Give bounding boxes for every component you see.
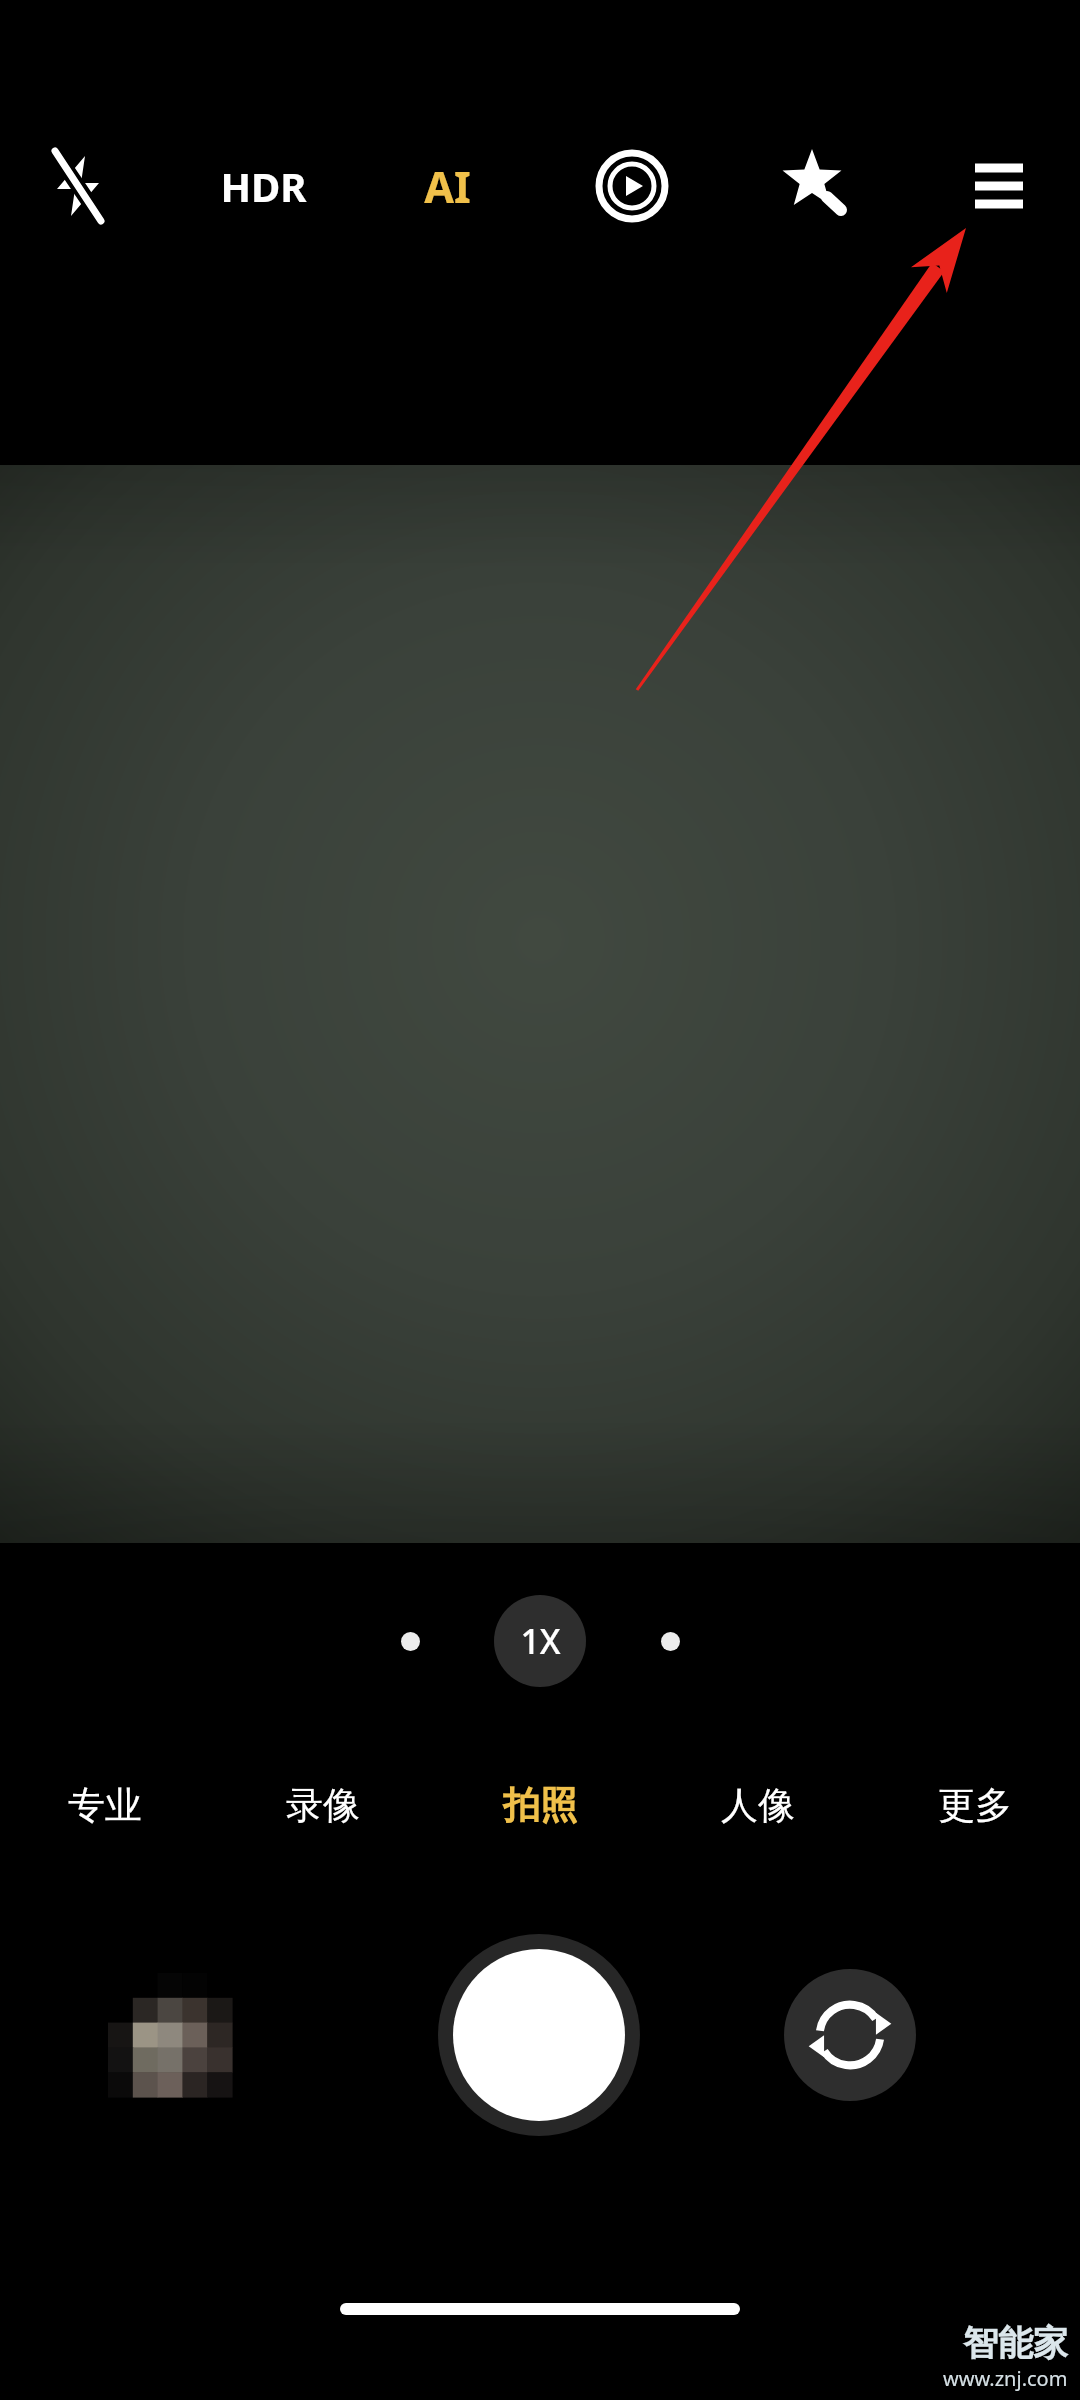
button[interactable]: Ultra wide xyxy=(392,1623,428,1659)
button[interactable]: Motion photo xyxy=(584,138,680,234)
staticText: 人像 xyxy=(721,1782,795,1829)
button[interactable]: 1X xyxy=(494,1595,586,1687)
button[interactable]: Telephoto xyxy=(652,1623,688,1659)
staticText: HDR xyxy=(220,159,307,213)
button[interactable]: Take photo xyxy=(438,1934,640,2136)
staticText: AI xyxy=(424,157,471,216)
staticText: 智能家 xyxy=(963,2321,1068,2365)
button[interactable]: AI xyxy=(377,138,517,234)
staticText: 专业 xyxy=(68,1782,142,1829)
button[interactable]: 专业 xyxy=(30,1760,180,1850)
button[interactable]: 人像 xyxy=(683,1760,833,1850)
button[interactable]: 录像 xyxy=(248,1760,398,1850)
staticText: 更多 xyxy=(938,1782,1012,1829)
staticText: www.znj.com xyxy=(943,2365,1068,2392)
button[interactable]: 拍照 xyxy=(465,1760,615,1850)
button[interactable]: Beauty filter xyxy=(767,138,863,234)
staticText: 录像 xyxy=(286,1782,360,1829)
button[interactable]: HDR xyxy=(193,138,333,234)
button[interactable]: Flash off xyxy=(30,138,126,234)
button[interactable]: 更多 xyxy=(900,1760,1050,1850)
staticText: 拍照 xyxy=(503,1782,577,1829)
button[interactable]: Gallery xyxy=(108,1973,232,2097)
staticText: 1X xyxy=(520,1618,561,1664)
button[interactable]: Switch camera xyxy=(784,1969,916,2101)
button[interactable]: Settings menu xyxy=(951,138,1047,234)
